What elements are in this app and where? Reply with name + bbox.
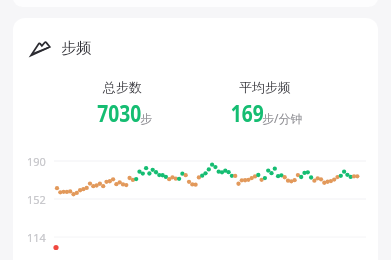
- staticText: 190: [27, 154, 46, 168]
- button[interactable]: 总步数: [52, 79, 192, 129]
- staticText: 平均步频: [239, 79, 291, 95]
- staticText: 总步数: [103, 79, 142, 95]
- staticText: 7030: [97, 96, 132, 129]
- staticText: 步频: [61, 39, 91, 58]
- button[interactable]: 步频: [29, 38, 91, 58]
- staticText: 169: [231, 96, 253, 129]
- staticText: 114: [27, 230, 46, 244]
- staticText: 步/分钟: [262, 110, 303, 126]
- staticText: 152: [27, 192, 46, 206]
- button[interactable]: 平均步频: [193, 79, 337, 129]
- staticText: 步: [140, 111, 152, 126]
